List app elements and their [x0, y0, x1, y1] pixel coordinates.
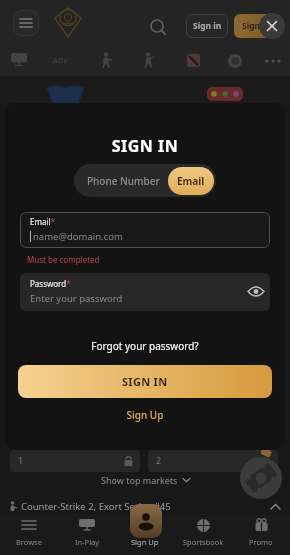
button[interactable]: Sign in [186, 14, 228, 38]
staticText: Sign Up [242, 20, 275, 32]
staticText: Sign in [193, 20, 222, 32]
staticText: SIGN IN [122, 374, 168, 389]
button[interactable]: Promo [232, 517, 290, 555]
button[interactable]: Sign Up [234, 14, 282, 38]
button[interactable]: Sportsbook [174, 517, 232, 555]
button[interactable]: Phone Number [74, 164, 172, 197]
staticText: Must be completed [27, 254, 100, 265]
staticText: Email* [30, 216, 55, 227]
button[interactable]: Show top markets [0, 474, 290, 486]
button[interactable] [259, 13, 285, 39]
button[interactable] [150, 19, 167, 36]
button[interactable]: Email* [20, 212, 270, 248]
staticText: 1 [18, 454, 24, 466]
staticText: AOV [53, 56, 68, 66]
button[interactable]: Password* [20, 273, 270, 311]
button[interactable]: Browse [0, 517, 58, 555]
button[interactable] [130, 504, 162, 538]
staticText: Sportsbook [183, 537, 224, 547]
button[interactable]: In-Play [58, 517, 116, 555]
button[interactable]: SIGN IN [18, 365, 272, 398]
button[interactable] [13, 10, 39, 36]
button[interactable]: Email [168, 167, 214, 195]
staticText: Email [177, 174, 205, 188]
staticText: Phone Number [87, 174, 160, 188]
staticText: 2 [156, 454, 162, 466]
staticText: Password* [30, 278, 71, 289]
staticText: Enter your password [30, 292, 123, 305]
staticText: Browse [16, 537, 42, 547]
button[interactable]: Sign Up [116, 517, 174, 555]
staticText: Counter-Strike 2, Exort Series #45 [21, 500, 171, 513]
staticText: Promo [249, 537, 273, 547]
button[interactable]: Forgot your password? [5, 339, 285, 353]
button[interactable]: Sign Up [5, 408, 285, 422]
button[interactable] [240, 457, 282, 499]
staticText: Sign Up [131, 537, 159, 547]
staticText: Show top markets [101, 474, 178, 486]
staticText: name@domain.com [33, 230, 123, 243]
staticText: SIGN IN [5, 135, 285, 157]
staticText: In-Play [75, 537, 100, 547]
